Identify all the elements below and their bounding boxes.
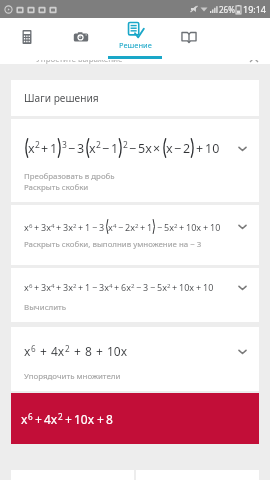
staticText: +: [172, 281, 178, 293]
staticText: +: [196, 140, 204, 157]
staticText: −: [118, 221, 124, 233]
staticText: +: [114, 281, 120, 293]
staticText: 8: [106, 411, 113, 427]
staticText: 10: [210, 221, 221, 233]
staticText: 5x: [157, 281, 167, 293]
staticText: +: [56, 281, 62, 293]
button[interactable]: x: [11, 205, 259, 265]
staticText: 1: [147, 221, 153, 233]
staticText: 2: [174, 221, 178, 229]
staticText: 19:14: [243, 3, 267, 15]
staticText: 1: [50, 140, 58, 157]
staticText: 2: [58, 411, 63, 422]
button[interactable]: x: [11, 268, 259, 322]
staticText: 2x: [125, 221, 135, 233]
staticText: +: [179, 221, 185, 233]
staticText: 3: [143, 281, 149, 293]
staticText: −: [157, 221, 163, 233]
staticText: Шаги решения: [24, 91, 99, 105]
staticText: Решение: [119, 40, 152, 50]
staticText: 6: [29, 221, 33, 229]
staticText: x: [24, 221, 29, 233]
button[interactable]: Учебник: [162, 18, 216, 60]
staticText: 10: [203, 281, 214, 293]
staticText: 10x: [186, 221, 202, 233]
staticText: Преобразовать в дробь: [24, 171, 115, 182]
staticText: +: [74, 343, 81, 359]
staticText: x: [108, 221, 113, 233]
staticText: 10x: [107, 343, 128, 359]
staticText: 26%: [219, 4, 235, 15]
button[interactable]: x: [11, 119, 259, 202]
staticText: +: [40, 343, 47, 359]
staticText: +: [41, 140, 49, 157]
staticText: 4x: [51, 343, 65, 359]
staticText: 4: [51, 221, 55, 229]
button[interactable]: Камера: [54, 18, 108, 60]
button[interactable]: Шаги решения: [11, 80, 259, 116]
button[interactable]: Решение: [108, 18, 162, 60]
staticText: 3x: [99, 281, 109, 293]
staticText: +: [196, 281, 202, 293]
button[interactable]: Калькулятор: [0, 18, 54, 60]
staticText: 3x: [63, 281, 73, 293]
staticText: Упростите выражение: [36, 53, 123, 64]
staticText: 4: [113, 221, 117, 229]
staticText: 2: [167, 281, 171, 289]
staticText: 2: [96, 139, 101, 151]
staticText: 3x: [41, 221, 51, 233]
staticText: −: [102, 140, 110, 157]
staticText: x: [28, 140, 35, 157]
staticText: +: [78, 221, 84, 233]
staticText: 5x: [164, 221, 174, 233]
button[interactable]: x: [11, 393, 259, 444]
staticText: +: [140, 221, 146, 233]
staticText: x: [166, 140, 173, 157]
button[interactable]: x: [11, 327, 259, 391]
staticText: 1: [111, 140, 119, 157]
staticText: 2: [123, 139, 128, 151]
staticText: −: [92, 221, 98, 233]
staticText: Упорядочить множители: [24, 371, 121, 382]
staticText: −: [68, 140, 76, 157]
staticText: −: [129, 140, 137, 157]
staticText: 10x: [74, 411, 95, 427]
staticText: 4x: [44, 411, 58, 427]
staticText: x: [24, 281, 29, 293]
staticText: +: [56, 221, 62, 233]
staticText: +: [65, 411, 72, 427]
staticText: 6x: [121, 281, 131, 293]
staticText: +: [96, 343, 103, 359]
staticText: Раскрыть скобки: [24, 182, 89, 193]
staticText: x: [21, 411, 28, 427]
staticText: 8: [85, 343, 92, 359]
staticText: 2: [65, 343, 70, 354]
staticText: −: [174, 140, 182, 157]
staticText: x: [24, 343, 31, 359]
staticText: +: [35, 411, 42, 427]
staticText: 6: [29, 281, 33, 289]
staticText: 2: [35, 139, 40, 151]
staticText: ×: [153, 140, 161, 157]
staticText: 1: [85, 221, 91, 233]
staticText: −: [150, 281, 156, 293]
staticText: +: [203, 221, 209, 233]
staticText: 10x: [179, 281, 195, 293]
staticText: 3: [99, 221, 105, 233]
staticText: 3x: [63, 221, 73, 233]
staticText: 3: [62, 139, 67, 151]
staticText: 6: [28, 411, 33, 422]
staticText: +: [78, 281, 84, 293]
staticText: +: [97, 411, 104, 427]
staticText: 3: [77, 140, 85, 157]
staticText: +: [34, 281, 40, 293]
staticText: +: [34, 221, 40, 233]
staticText: 1: [85, 281, 91, 293]
staticText: 5x: [138, 140, 152, 157]
staticText: 2: [131, 281, 135, 289]
staticText: 6: [31, 343, 36, 354]
staticText: 2: [183, 140, 191, 157]
staticText: 4: [109, 281, 113, 289]
